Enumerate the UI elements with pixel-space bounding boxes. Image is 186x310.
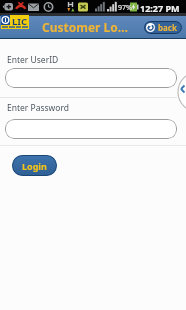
- staticText: Login: [22, 160, 47, 172]
- button[interactable]: [5, 68, 177, 88]
- button[interactable]: [5, 119, 177, 139]
- button[interactable]: back: [144, 21, 182, 34]
- staticText: back: [158, 22, 177, 33]
- staticText: LIC: [12, 15, 28, 25]
- button[interactable]: Login: [12, 155, 57, 176]
- staticText: Enter UserID: [7, 54, 59, 66]
- staticText: 12:27 PM: [140, 2, 180, 14]
- staticText: Customer Lo…: [42, 19, 129, 35]
- staticText: 97%: [118, 3, 132, 13]
- button[interactable]: [176, 70, 186, 114]
- staticText: Enter Password: [7, 102, 70, 114]
